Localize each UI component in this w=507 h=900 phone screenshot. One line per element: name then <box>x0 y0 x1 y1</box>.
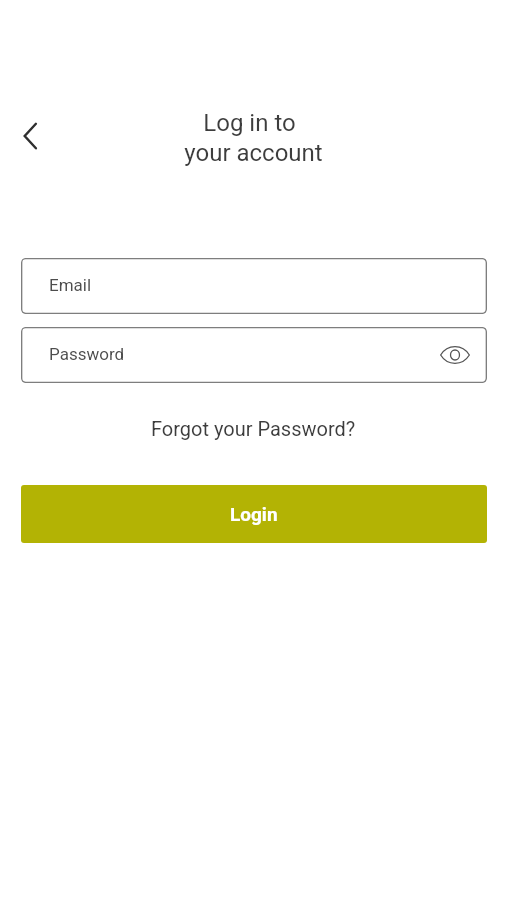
button[interactable]: Email <box>21 258 487 314</box>
staticText: Login <box>230 503 278 525</box>
button[interactable]: Forgot your Password? <box>141 412 366 445</box>
button[interactable]: Back <box>2 112 48 158</box>
staticText: Email <box>49 275 92 295</box>
staticText: your account <box>184 139 323 167</box>
staticText: Password <box>49 344 125 364</box>
staticText: Log in to <box>203 109 296 137</box>
button[interactable]: Login <box>21 485 487 543</box>
button[interactable]: Password <box>21 327 487 383</box>
button[interactable]: Show password <box>436 336 474 374</box>
